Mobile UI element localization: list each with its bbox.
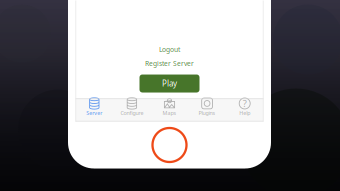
button[interactable]: Configure bbox=[113, 98, 151, 121]
staticText: Register Server bbox=[145, 59, 194, 68]
button[interactable]: Maps bbox=[151, 98, 188, 121]
staticText: Plugins bbox=[199, 109, 216, 117]
staticText: Server bbox=[86, 109, 102, 117]
staticText: Help bbox=[239, 109, 250, 117]
staticText: Maps bbox=[162, 109, 176, 117]
staticText: Configure bbox=[120, 109, 143, 117]
button[interactable]: Logout bbox=[75, 44, 263, 54]
button[interactable]: Home bbox=[152, 128, 186, 162]
staticText: Play bbox=[162, 78, 177, 89]
button[interactable]: ? bbox=[226, 98, 263, 121]
staticText: Logout bbox=[159, 45, 180, 54]
button[interactable]: Plugins bbox=[188, 98, 226, 121]
button[interactable]: Register Server bbox=[75, 58, 263, 68]
staticText: ? bbox=[243, 97, 247, 110]
button[interactable]: Server bbox=[75, 98, 113, 121]
button[interactable]: Play bbox=[139, 74, 199, 92]
